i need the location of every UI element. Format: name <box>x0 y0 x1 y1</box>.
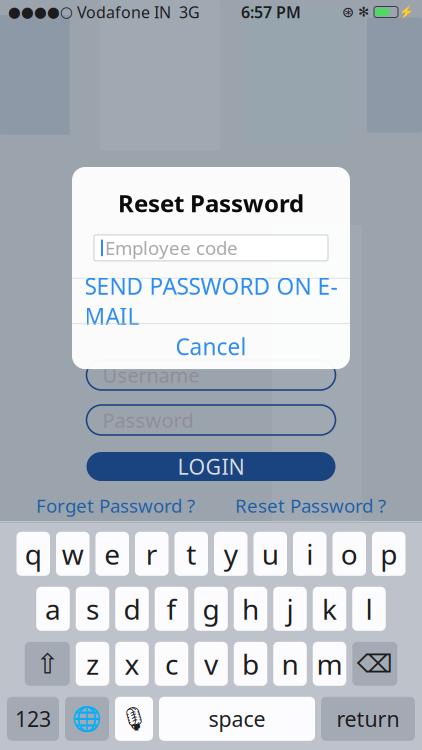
staticText: ✻ <box>354 4 373 19</box>
button[interactable]: u <box>253 532 287 576</box>
staticText: 🌐 <box>72 705 102 732</box>
staticText: ⌫ <box>357 649 393 678</box>
button[interactable]: i <box>293 532 326 576</box>
staticText: Employee code <box>105 235 238 260</box>
staticText: space <box>208 705 265 733</box>
staticText: q <box>25 535 42 572</box>
button[interactable]: h <box>234 587 267 631</box>
button[interactable]: g <box>194 587 228 631</box>
staticText: Username <box>102 362 199 388</box>
button[interactable]: p <box>372 532 405 576</box>
button[interactable]: Reset Password ? <box>235 493 386 518</box>
button[interactable]: l <box>352 587 386 631</box>
button[interactable]: o <box>332 532 366 576</box>
button[interactable]: c <box>155 642 188 686</box>
button[interactable]: z <box>76 642 109 686</box>
staticText: Reset Password ? <box>235 493 386 518</box>
staticText: s <box>86 590 99 627</box>
button[interactable]: LOGIN <box>86 452 335 481</box>
staticText: c <box>165 645 178 682</box>
staticText: t <box>186 535 196 572</box>
staticText: l <box>365 590 372 627</box>
button[interactable]: j <box>273 587 307 631</box>
staticText: n <box>281 645 298 682</box>
button[interactable]: e <box>95 532 129 576</box>
staticText: 3G <box>171 1 200 23</box>
button[interactable]: r <box>135 532 168 576</box>
staticText: g <box>202 590 219 627</box>
button[interactable]: SEND PASSWORD ON E-MAIL <box>72 278 350 323</box>
staticText: o <box>341 535 358 572</box>
button[interactable]: d <box>115 587 149 631</box>
staticText: Password <box>102 407 193 433</box>
button[interactable]: n <box>273 642 307 686</box>
button[interactable]: y <box>214 532 247 576</box>
staticText: SEND PASSWORD ON E-MAIL <box>84 271 337 331</box>
staticText: return <box>336 705 399 733</box>
button[interactable]: Next keyboard <box>65 697 109 741</box>
staticText: Reset Password <box>118 187 304 219</box>
staticText: v <box>204 645 218 682</box>
staticText: x <box>124 645 139 682</box>
staticText: m <box>316 645 342 682</box>
button[interactable]: w <box>56 532 89 576</box>
staticText: i <box>306 535 313 572</box>
button[interactable]: return <box>321 697 415 741</box>
staticText: r <box>146 535 158 572</box>
staticText: h <box>242 590 259 627</box>
staticText: ⚡ <box>399 5 414 19</box>
button[interactable]: k <box>313 587 346 631</box>
staticText: y <box>224 535 238 572</box>
staticText: w <box>62 535 84 572</box>
staticText: f <box>166 590 176 627</box>
staticText: Cancel <box>175 331 246 362</box>
button[interactable]: a <box>36 587 70 631</box>
staticText: ⊛ <box>342 4 354 20</box>
staticText: p <box>380 535 397 572</box>
button[interactable]: t <box>174 532 208 576</box>
button[interactable]: Forget Password ? <box>36 493 195 518</box>
button[interactable]: v <box>194 642 228 686</box>
button[interactable]: x <box>115 642 149 686</box>
staticText: LOGIN <box>177 452 244 481</box>
staticText: Forget Password ? <box>36 493 195 518</box>
button[interactable]: Cancel <box>72 324 350 369</box>
staticText: d <box>123 590 140 627</box>
staticText: j <box>286 590 293 627</box>
button[interactable]: m <box>313 642 346 686</box>
staticText: ⇧ <box>36 648 59 680</box>
staticText: u <box>262 535 279 572</box>
staticText: e <box>104 535 120 572</box>
staticText: a <box>45 590 61 627</box>
staticText: b <box>242 645 259 682</box>
staticText: Vodafone IN <box>73 1 171 23</box>
staticText: k <box>322 590 337 627</box>
staticText: 6:57 PM <box>241 1 301 23</box>
button[interactable]: b <box>234 642 267 686</box>
button[interactable]: q <box>16 532 50 576</box>
staticText: ●●●●○ <box>8 4 73 20</box>
button[interactable]: s <box>76 587 109 631</box>
button[interactable]: Delete <box>352 642 397 686</box>
button[interactable]: Shift <box>25 642 70 686</box>
button[interactable]: space <box>159 697 315 741</box>
staticText: z <box>86 645 99 682</box>
staticText: 🎙 <box>119 706 148 732</box>
button[interactable]: Dictation <box>115 697 153 741</box>
staticText: 123 <box>15 705 51 733</box>
button[interactable]: f <box>155 587 188 631</box>
button[interactable]: 123 <box>7 697 59 741</box>
